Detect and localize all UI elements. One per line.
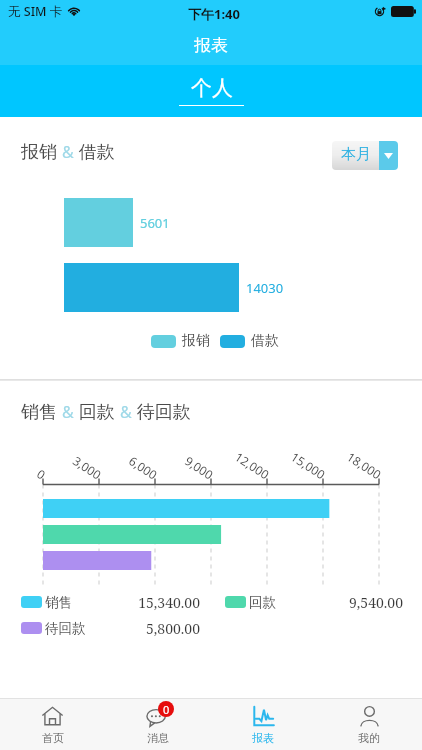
staticText: 报表 xyxy=(252,731,274,745)
staticText: 5601 xyxy=(140,214,170,232)
staticText: 待回款 xyxy=(132,399,191,424)
staticText: 销售 xyxy=(45,594,72,610)
staticText: 报销 xyxy=(182,332,210,350)
staticText: 14030 xyxy=(246,279,284,297)
button[interactable]: 我的 xyxy=(316,699,422,750)
staticText: 5,800.00 xyxy=(146,619,200,638)
staticText: 待回款 xyxy=(45,620,86,636)
button[interactable]: 0 xyxy=(105,699,210,750)
button[interactable]: 个人 xyxy=(0,65,422,117)
staticText: 无 SIM 卡 xyxy=(8,3,63,20)
button[interactable]: 首页 xyxy=(0,699,105,750)
staticText: 报销 xyxy=(21,139,62,164)
staticText: & xyxy=(62,141,74,163)
staticText: & xyxy=(120,401,132,423)
button[interactable]: 报表 xyxy=(210,699,316,750)
staticText: 下午1:40 xyxy=(188,5,240,23)
staticText: 9,540.00 xyxy=(349,593,403,612)
staticText: 0 xyxy=(163,702,170,717)
staticText: 消息 xyxy=(147,731,169,745)
staticText: 回款 xyxy=(74,399,120,424)
staticText: 借款 xyxy=(74,139,115,164)
staticText: 借款 xyxy=(251,332,279,350)
staticText: 报表 xyxy=(194,35,228,56)
staticText: 15,340.00 xyxy=(138,593,200,612)
staticText: 回款 xyxy=(249,594,276,610)
staticText: 个人 xyxy=(191,75,233,101)
button[interactable]: 本月 xyxy=(332,141,398,170)
staticText: 我的 xyxy=(358,731,380,745)
staticText: & xyxy=(62,401,74,423)
staticText: 首页 xyxy=(42,731,64,745)
staticText: 销售 xyxy=(21,399,62,424)
staticText: 本月 xyxy=(341,145,371,164)
